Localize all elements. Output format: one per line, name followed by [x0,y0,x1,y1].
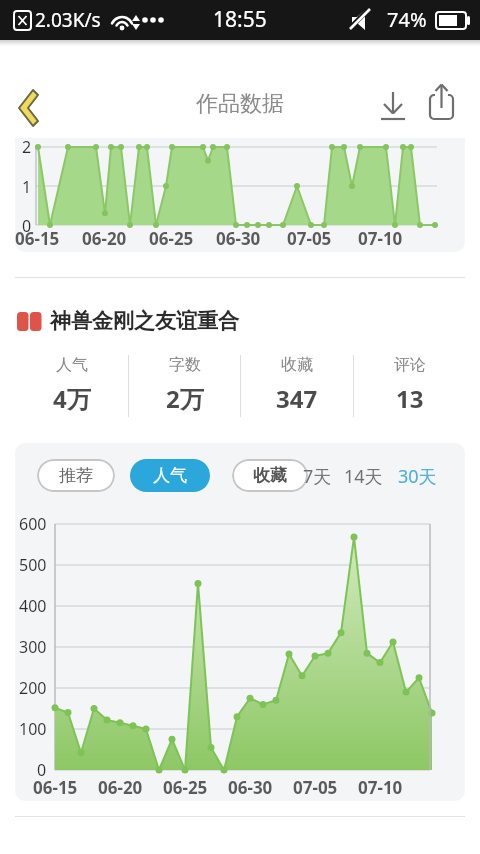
staticText: 13 [396,382,424,414]
button[interactable]: 神兽金刚之友谊重合 [50,307,350,335]
staticText: 06-30 [228,776,273,799]
button[interactable]: 人气 [130,459,210,492]
staticText: 600 [19,513,47,535]
button[interactable]: 30天 [394,462,440,490]
staticText: 07-05 [293,776,338,799]
staticText: 06-15 [33,776,78,799]
staticText: 0 [22,215,32,235]
button[interactable] [424,80,462,128]
button[interactable] [375,86,415,130]
staticText: 06-30 [216,227,261,249]
staticText: 200 [19,677,47,699]
button[interactable]: 收藏 [232,459,308,492]
staticText: 07-05 [287,227,332,249]
staticText: 字数 [169,355,201,375]
staticText: 7天 [303,464,332,489]
staticText: 74% [387,6,427,32]
staticText: 1 [22,176,32,196]
staticText: 推荐 [59,465,93,486]
staticText: 400 [19,595,47,617]
staticText: 人气 [153,465,187,486]
staticText: 人气 [56,355,88,375]
staticText: 18:55 [213,5,267,33]
staticText: 500 [19,554,47,576]
button[interactable]: 推荐 [37,459,115,492]
staticText: 4万 [53,382,91,414]
staticText: 2 [22,136,32,156]
staticText: 收藏 [253,465,287,486]
staticText: 06-20 [82,227,127,249]
staticText: 评论 [394,355,426,375]
button[interactable]: 14天 [340,462,386,490]
staticText: 06-25 [163,776,208,799]
staticText: 2.03K/s [35,7,101,33]
staticText: 作品数据 [196,90,284,118]
staticText: 收藏 [281,355,313,375]
button[interactable]: 7天 [300,462,334,490]
staticText: 2万 [166,382,204,414]
staticText: 06-20 [98,776,143,799]
button[interactable] [8,82,52,134]
staticText: 06-25 [149,227,194,249]
staticText: 347 [276,382,318,414]
staticText: 06-15 [15,227,60,249]
staticText: 07-10 [358,776,403,799]
staticText: 14天 [344,464,383,489]
staticText: 30天 [398,464,437,489]
staticText: 神兽金刚之友谊重合 [50,308,239,334]
staticText: 100 [19,718,47,740]
staticText: 300 [19,636,47,658]
staticText: 0 [37,759,47,781]
staticText: 07-10 [358,227,403,249]
